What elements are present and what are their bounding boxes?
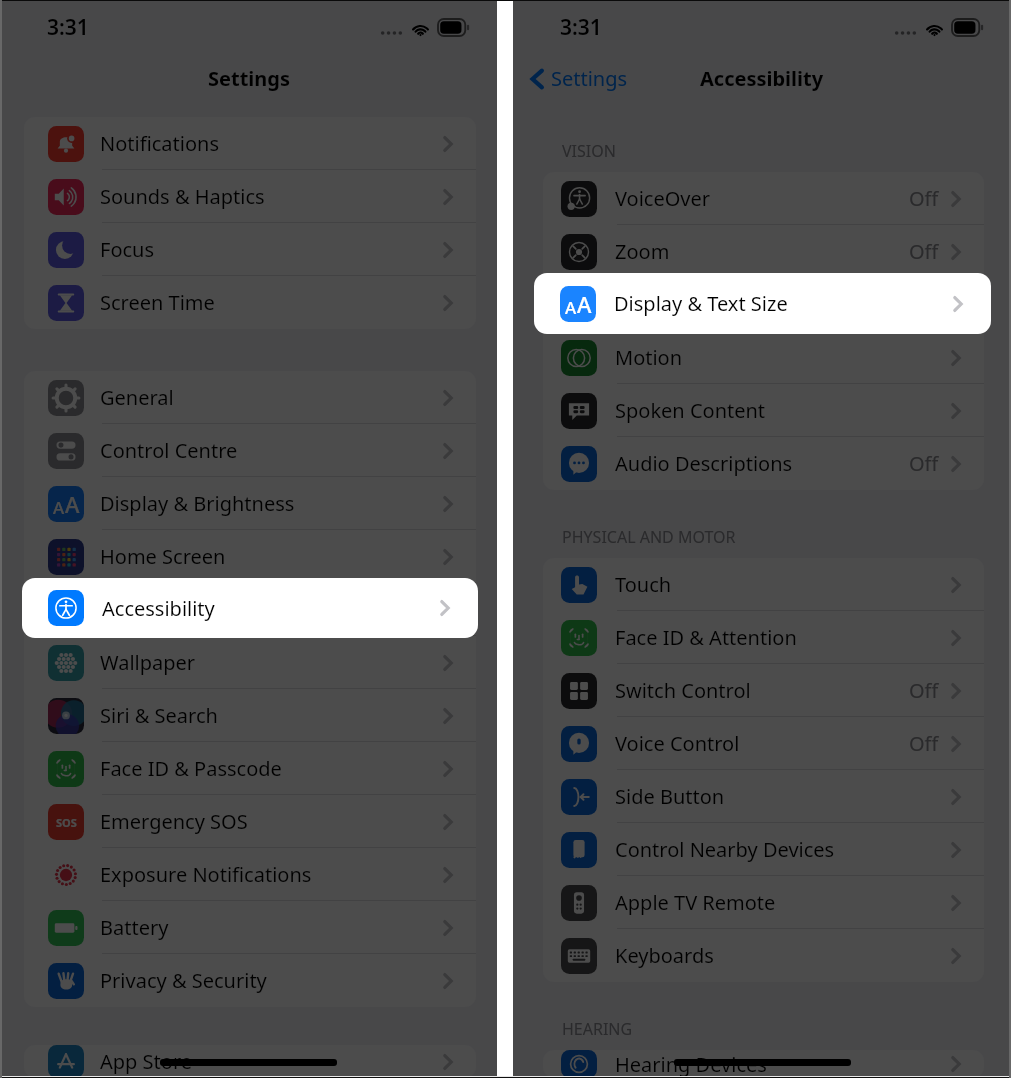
button[interactable]: SOS (24, 795, 476, 848)
staticText: Focus (100, 236, 155, 263)
staticText: Off (909, 238, 939, 265)
staticText: Audio Descriptions (615, 450, 793, 477)
button[interactable]: Notifications (24, 117, 476, 170)
button[interactable]: A (24, 477, 476, 530)
button[interactable]: Accessibility (22, 578, 478, 638)
button[interactable]: App Store (24, 1045, 476, 1078)
staticText: Face ID & Attention (615, 624, 797, 651)
button[interactable]: Audio Descriptions (543, 437, 984, 490)
staticText: Exposure Notifications (100, 861, 312, 888)
staticText: Settings (208, 65, 290, 92)
staticText: Zoom (615, 238, 670, 265)
staticText: Control Nearby Devices (615, 836, 835, 863)
staticText: Home Screen (100, 543, 226, 570)
button[interactable]: General (24, 371, 476, 424)
button[interactable]: Focus (24, 223, 476, 276)
staticText: Off (909, 730, 939, 757)
staticText: Wallpaper (100, 649, 196, 676)
other: Back (530, 66, 544, 92)
button[interactable]: Keyboards (543, 929, 984, 982)
button[interactable]: Motion (543, 331, 984, 384)
staticText: Display & Text Size (614, 290, 788, 317)
staticText: Touch (615, 571, 672, 598)
staticText: Display & Brightness (100, 490, 295, 517)
button[interactable]: Hearing Devices (543, 1050, 984, 1078)
button[interactable]: Side Button (543, 770, 984, 823)
button[interactable]: Home Screen (24, 530, 476, 583)
staticText: Motion (615, 344, 683, 371)
staticText: Keyboards (615, 942, 714, 969)
staticText: Accessibility (700, 65, 824, 92)
staticText: A (566, 297, 578, 320)
button[interactable]: Accessibility (24, 583, 476, 636)
button[interactable]: Voice Control (543, 717, 984, 770)
staticText: Screen Time (100, 289, 215, 316)
staticText: Hearing Devices (615, 1051, 767, 1078)
staticText: A (577, 289, 592, 319)
staticText: Off (909, 677, 939, 704)
button[interactable]: Spoken Content (543, 384, 984, 437)
staticText: A (565, 296, 577, 319)
button[interactable]: Face ID & Passcode (24, 742, 476, 795)
button[interactable]: VoiceOver (543, 172, 984, 225)
staticText: Off (909, 185, 939, 212)
staticText: VISION (562, 140, 616, 162)
staticText: A (53, 496, 65, 519)
button[interactable]: Control Centre (24, 424, 476, 477)
staticText: General (100, 384, 174, 411)
staticText: SOS (56, 815, 77, 830)
staticText: Off (909, 450, 939, 477)
button[interactable]: Exposure Notifications (24, 848, 476, 901)
staticText: App Store (100, 1048, 193, 1075)
staticText: Control Centre (100, 437, 238, 464)
button[interactable]: Siri & Search (24, 689, 476, 742)
button[interactable]: Zoom (543, 225, 984, 278)
button[interactable]: Sounds & Haptics (24, 170, 476, 223)
button[interactable]: Privacy & Security (24, 954, 476, 1007)
button[interactable]: Screen Time (24, 276, 476, 329)
staticText: A (65, 489, 80, 519)
button[interactable]: Wallpaper (24, 636, 476, 689)
staticText: HEARING (562, 1018, 633, 1040)
staticText: Accessibility (100, 596, 213, 623)
button[interactable]: A (543, 278, 984, 331)
staticText: Notifications (100, 130, 219, 157)
staticText: VoiceOver (615, 185, 711, 212)
staticText: PHYSICAL AND MOTOR (562, 526, 736, 548)
button[interactable]: Face ID & Attention (543, 611, 984, 664)
staticText: Voice Control (615, 730, 740, 757)
staticText: 3:31 (560, 13, 602, 42)
button[interactable]: Battery (24, 901, 476, 954)
button[interactable]: Back (530, 65, 628, 92)
staticText: Spoken Content (615, 397, 766, 424)
staticText: Side Button (615, 783, 725, 810)
staticText: Switch Control (615, 677, 751, 704)
staticText: Apple TV Remote (615, 889, 776, 916)
staticText: Face ID & Passcode (100, 755, 282, 782)
staticText: A (578, 290, 593, 320)
button[interactable]: Touch (543, 558, 984, 611)
staticText: Display & Text Size (615, 291, 789, 318)
button[interactable]: Control Nearby Devices (543, 823, 984, 876)
staticText: Accessibility (102, 595, 215, 622)
staticText: Settings (551, 65, 628, 92)
staticText: 3:31 (47, 13, 89, 42)
button[interactable]: Switch Control (543, 664, 984, 717)
button[interactable]: A (534, 273, 991, 334)
staticText: Emergency SOS (100, 808, 248, 835)
button[interactable]: Apple TV Remote (543, 876, 984, 929)
staticText: Sounds & Haptics (100, 183, 265, 210)
staticText: Battery (100, 914, 169, 941)
staticText: Privacy & Security (100, 967, 267, 994)
staticText: Siri & Search (100, 702, 218, 729)
